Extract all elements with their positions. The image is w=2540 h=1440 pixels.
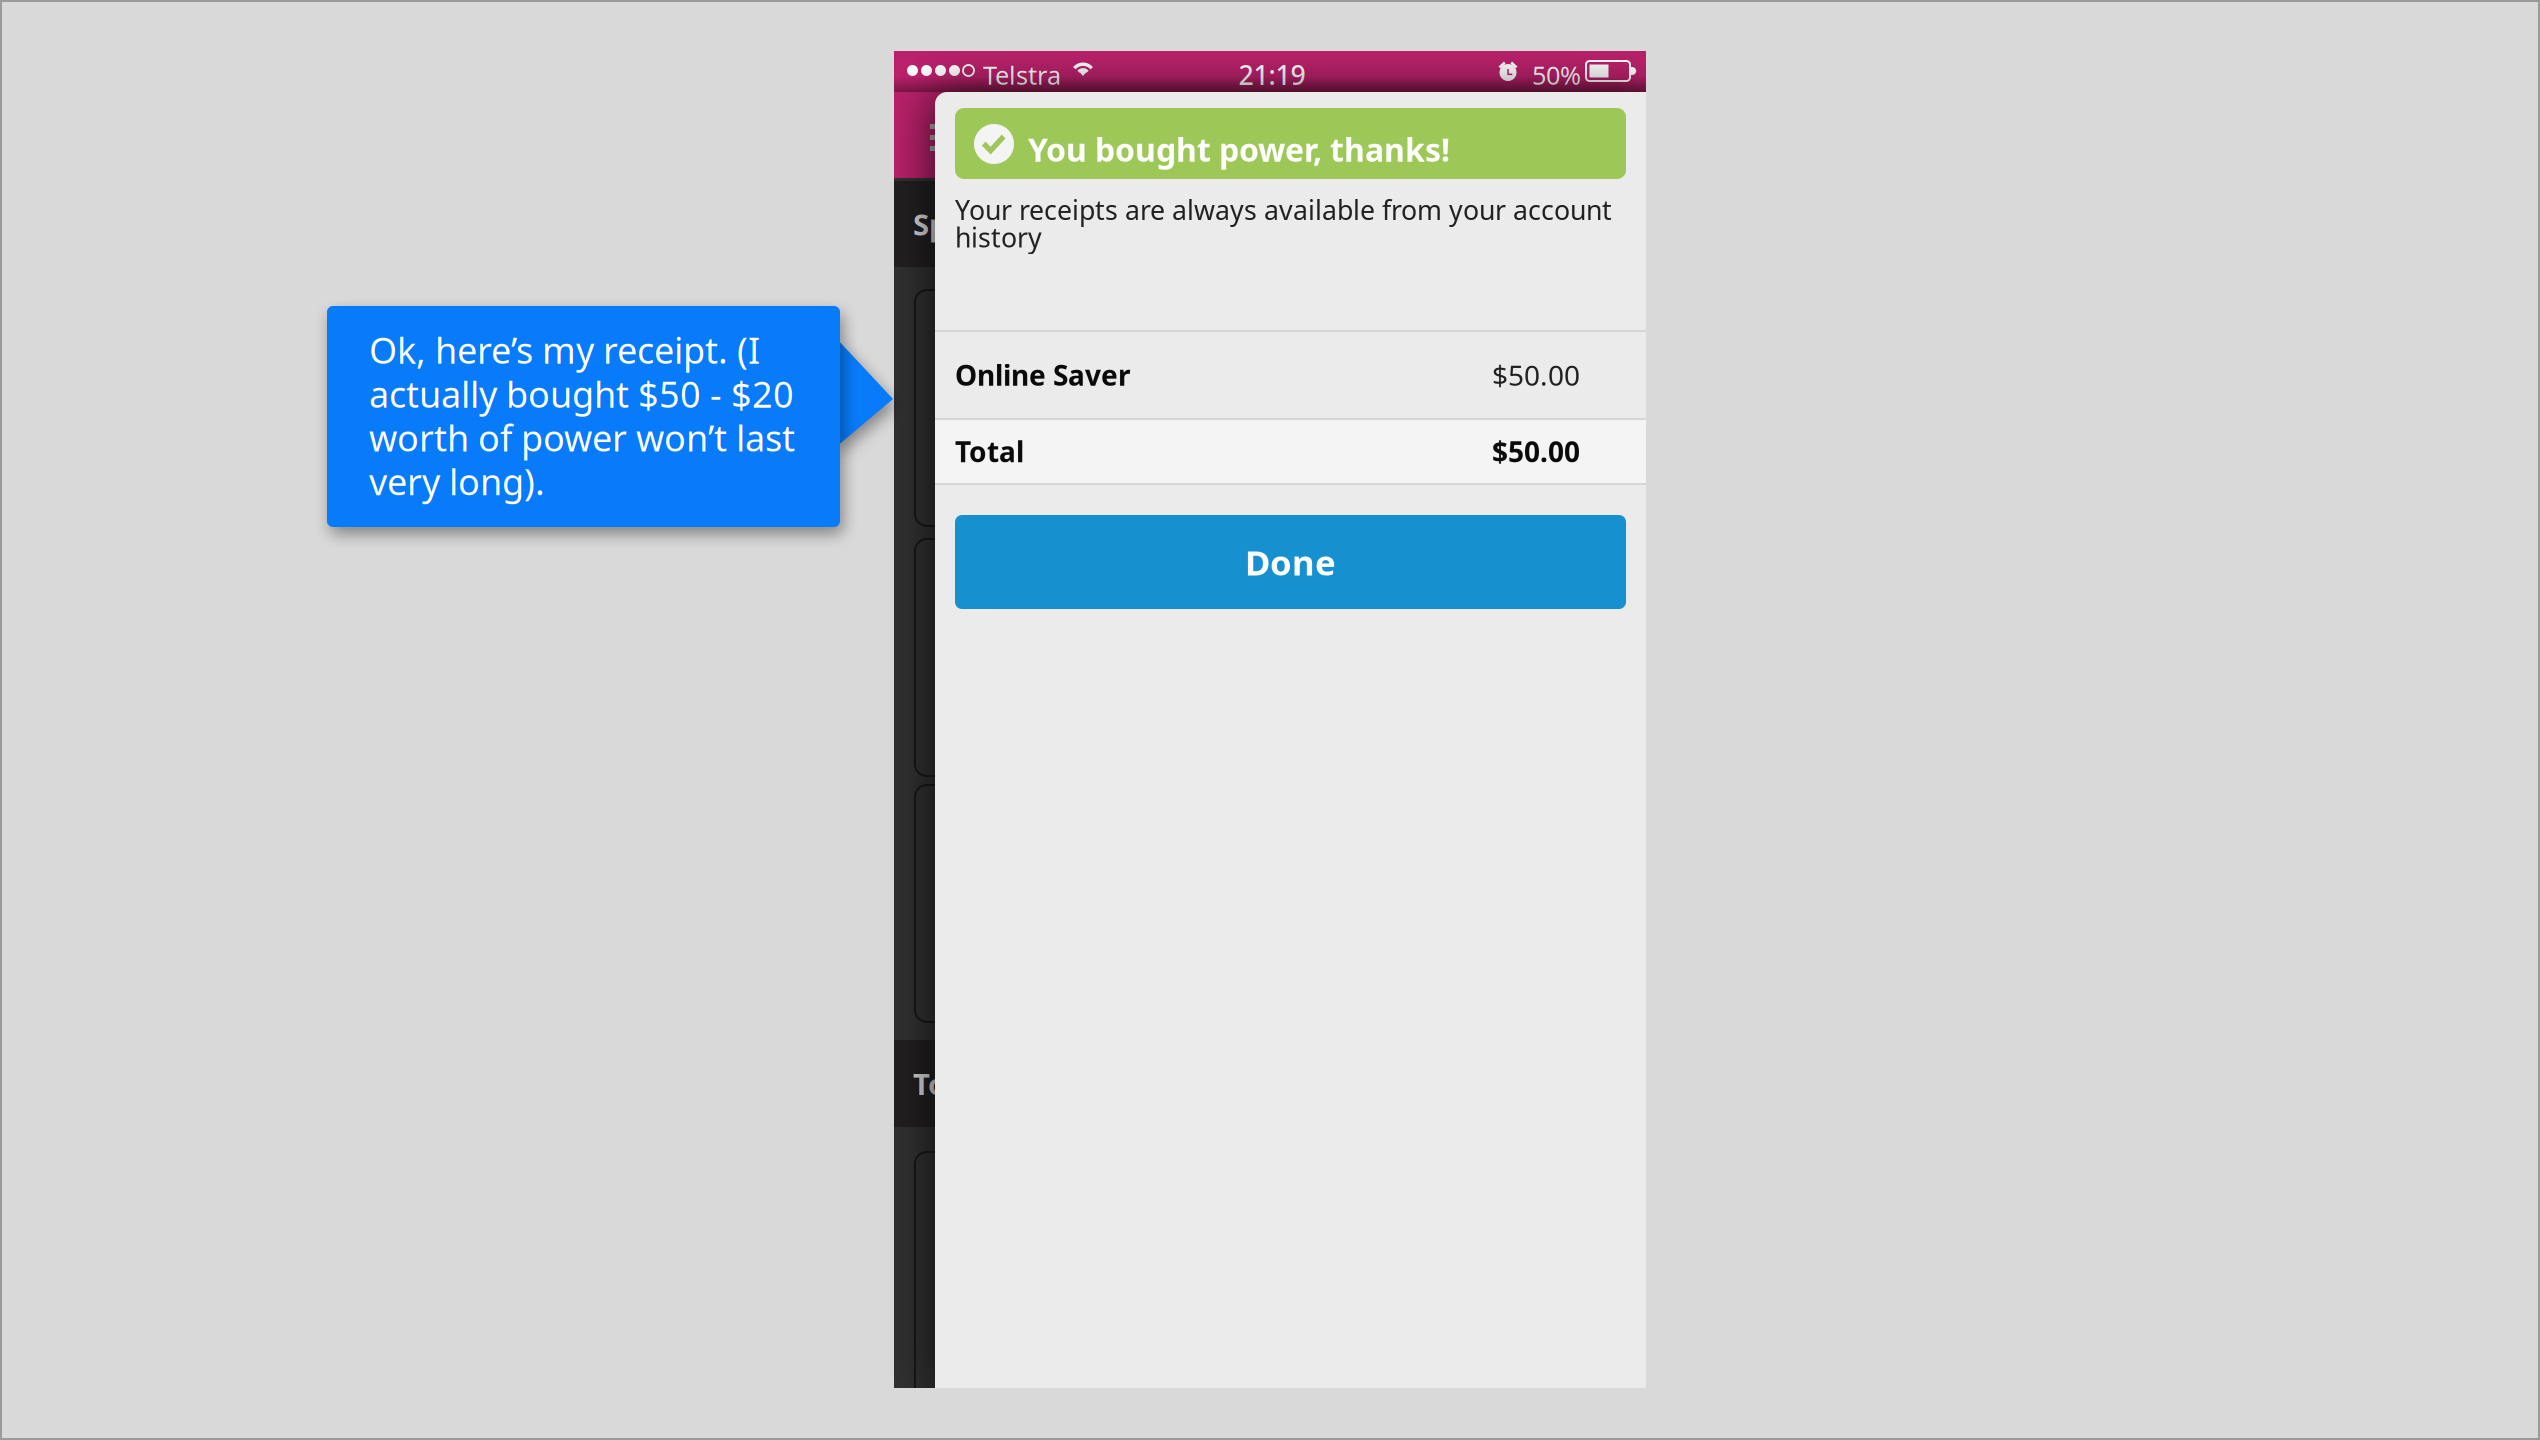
- staticText: $50.00: [1492, 356, 1580, 394]
- staticText: Your receipts are always available from …: [955, 192, 1612, 255]
- button[interactable]: Done: [955, 515, 1626, 609]
- staticText: Total: [913, 1064, 986, 1103]
- staticText: 21:19: [1238, 57, 1305, 92]
- staticText: Total: [955, 433, 1024, 470]
- staticText: Ok, here’s my receipt. (I actually bough…: [369, 326, 795, 505]
- staticText: Spend: [913, 204, 1004, 243]
- staticText: $50.00: [1492, 433, 1580, 470]
- staticText: 50%: [1532, 58, 1581, 92]
- staticText: Online Saver: [955, 356, 1131, 394]
- button[interactable]: Menu: [894, 51, 974, 131]
- staticText: You bought power, thanks!: [1028, 128, 1450, 170]
- staticText: Done: [1245, 539, 1336, 585]
- staticText: Telstra: [983, 58, 1061, 92]
